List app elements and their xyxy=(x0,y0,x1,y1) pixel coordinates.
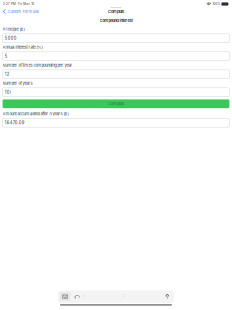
staticText: Custom Formulas xyxy=(7,9,39,14)
button[interactable]: 10 xyxy=(3,88,229,97)
staticText: Number of times compounding per year xyxy=(3,63,73,68)
staticText: Number of years xyxy=(3,81,33,86)
button[interactable]: Custom Formulas xyxy=(0,8,42,15)
staticText: 5 xyxy=(5,54,8,59)
staticText: Amount accumulated after n years ($) xyxy=(3,111,69,116)
staticText: 16470.09 xyxy=(5,120,25,125)
button[interactable]: 5 xyxy=(3,52,229,61)
button[interactable]: 5000 xyxy=(3,34,229,43)
staticText: Principle ($) xyxy=(3,27,25,32)
staticText: Compute xyxy=(108,101,124,106)
staticText: Compute xyxy=(108,9,124,14)
button[interactable]: 16470.09 xyxy=(3,118,229,127)
staticText: 5000 xyxy=(5,36,17,41)
staticText: Annual interest rate (%) xyxy=(3,45,43,50)
staticText: Fri May 10 xyxy=(18,2,34,6)
button[interactable]: Dictate xyxy=(162,292,172,301)
staticText: 2:27 PM xyxy=(3,2,16,6)
staticText: Compound interest xyxy=(99,18,132,23)
button[interactable]: Undo xyxy=(71,292,84,301)
button[interactable]: 12 xyxy=(3,70,229,79)
staticText: 12 xyxy=(5,72,10,77)
staticText: 10 xyxy=(5,90,10,95)
button[interactable]: Keyboard xyxy=(60,292,71,301)
button[interactable]: Compute xyxy=(3,99,229,108)
staticText: 100% xyxy=(212,2,220,6)
